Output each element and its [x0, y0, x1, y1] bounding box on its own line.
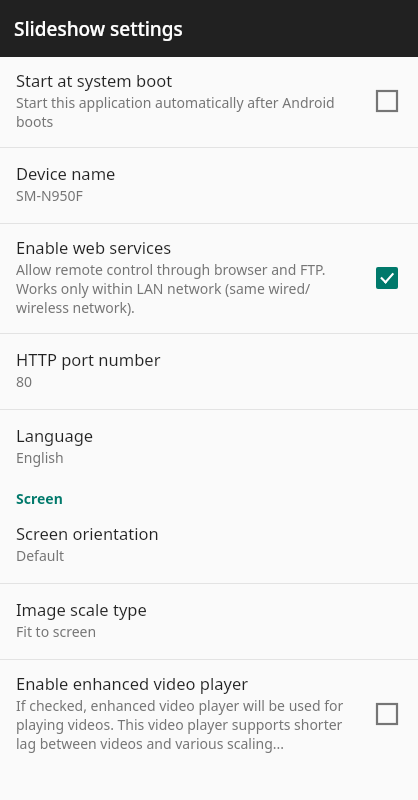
button[interactable]: Language	[0, 410, 418, 479]
staticText: Fit to screen	[16, 622, 97, 641]
button[interactable]: Image scale type	[0, 584, 418, 659]
button[interactable]: Start at system boot	[372, 86, 402, 116]
staticText: Language	[16, 426, 94, 447]
button[interactable]: HTTP port number	[0, 334, 418, 409]
staticText: Start this application automatically aft…	[16, 93, 358, 131]
button[interactable]: Screen orientation	[0, 514, 418, 583]
staticText: Start at system boot	[16, 71, 173, 92]
staticText: English	[16, 448, 64, 467]
staticText: Screen orientation	[16, 524, 159, 545]
button[interactable]: Enable web services	[0, 224, 418, 333]
button[interactable]: Start at system boot	[0, 57, 418, 147]
button[interactable]: Enable web services	[372, 263, 402, 293]
staticText: Image scale type	[16, 600, 147, 621]
staticText: Slideshow settings	[14, 16, 183, 42]
button[interactable]: Enable enhanced video player	[372, 699, 402, 729]
staticText: Enable web services	[16, 238, 172, 259]
staticText: Default	[16, 546, 65, 565]
staticText: SM-N950F	[16, 186, 83, 205]
staticText: Enable enhanced video player	[16, 674, 249, 695]
staticText: If checked, enhanced video player will b…	[16, 696, 358, 753]
button[interactable]: Device name	[0, 148, 418, 223]
staticText: HTTP port number	[16, 350, 161, 371]
staticText: 80	[16, 372, 33, 391]
staticText: Allow remote control through browser and…	[16, 260, 358, 317]
staticText: Screen	[16, 489, 63, 508]
button[interactable]: Enable enhanced video player	[0, 660, 418, 767]
staticText: Device name	[16, 164, 116, 185]
